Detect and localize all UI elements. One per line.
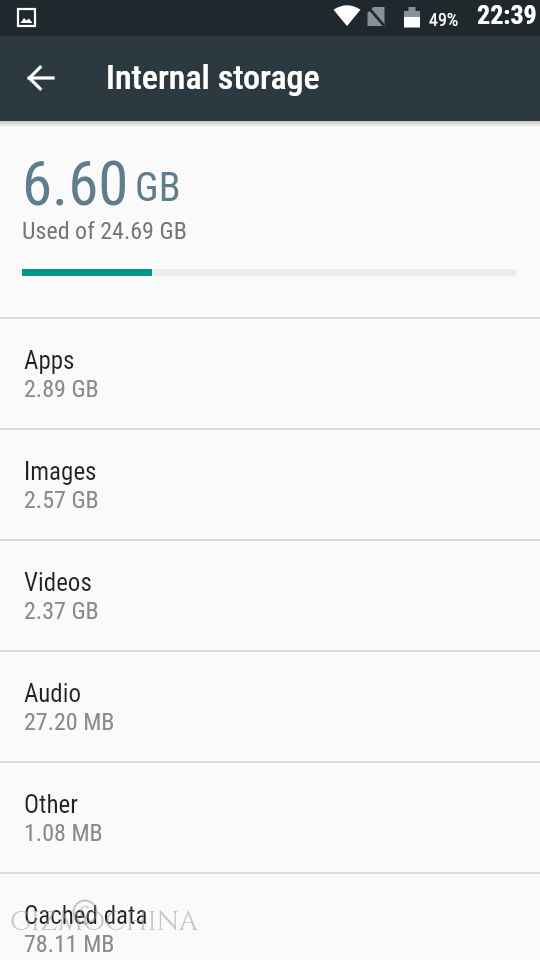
staticText: 1.08 MB [24, 819, 103, 847]
staticText: 49% [429, 9, 459, 30]
staticText: GB [135, 164, 181, 211]
staticText: Audio [24, 679, 82, 708]
staticText: Used of 24.69 GB [22, 217, 187, 245]
staticText: Videos [24, 568, 92, 597]
button[interactable]: Audio [0, 652, 540, 761]
staticText: Other [24, 790, 78, 819]
staticText: Apps [24, 346, 75, 375]
staticText: Cached data [24, 901, 148, 930]
button[interactable]: Other [0, 763, 540, 872]
staticText: GIZMOCHINA [10, 904, 199, 940]
staticText: 6.60 [22, 148, 129, 219]
staticText: 22:39 [477, 0, 537, 30]
button[interactable] [16, 53, 66, 103]
staticText: 78.11 MB [24, 930, 115, 958]
button[interactable]: Cached data [0, 874, 540, 960]
staticText: 2.89 GB [24, 375, 99, 403]
staticText: C [79, 900, 90, 923]
staticText: Internal storage [106, 57, 320, 97]
button[interactable]: Videos [0, 541, 540, 650]
staticText: 2.57 GB [24, 486, 99, 514]
button[interactable]: Images [0, 430, 540, 539]
button[interactable]: Apps [0, 319, 540, 428]
staticText: 2.37 GB [24, 597, 99, 625]
staticText: 27.20 MB [24, 708, 115, 736]
staticText: Images [24, 457, 97, 486]
